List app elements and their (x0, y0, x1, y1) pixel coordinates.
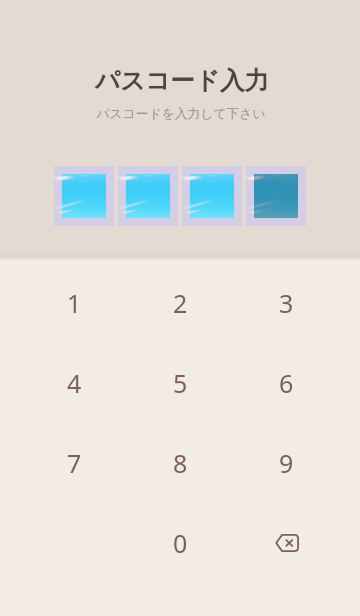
staticText: 3 (279, 286, 294, 320)
staticText: 7 (67, 446, 82, 480)
button[interactable]: 2 (127, 263, 233, 343)
staticText: 6 (279, 366, 294, 400)
staticText: 8 (173, 446, 188, 480)
staticText: パスコードを入力して下さい (96, 106, 266, 122)
button[interactable]: 4 (21, 343, 127, 423)
staticText: 4 (67, 366, 82, 400)
button[interactable]: 7 (21, 423, 127, 503)
button[interactable]: 0 (127, 503, 233, 583)
staticText: 2 (173, 286, 188, 320)
button[interactable]: 1 (21, 263, 127, 343)
button[interactable]: 6 (233, 343, 339, 423)
staticText: 5 (173, 366, 188, 400)
staticText: 1 (67, 286, 82, 320)
button[interactable]: 9 (233, 423, 339, 503)
button[interactable]: 5 (127, 343, 233, 423)
staticText: 9 (279, 446, 294, 480)
button[interactable]: 3 (233, 263, 339, 343)
staticText: パスコード入力 (95, 65, 269, 96)
staticText: 0 (173, 526, 188, 560)
button[interactable]: 8 (127, 423, 233, 503)
button[interactable]: Delete (233, 503, 339, 583)
